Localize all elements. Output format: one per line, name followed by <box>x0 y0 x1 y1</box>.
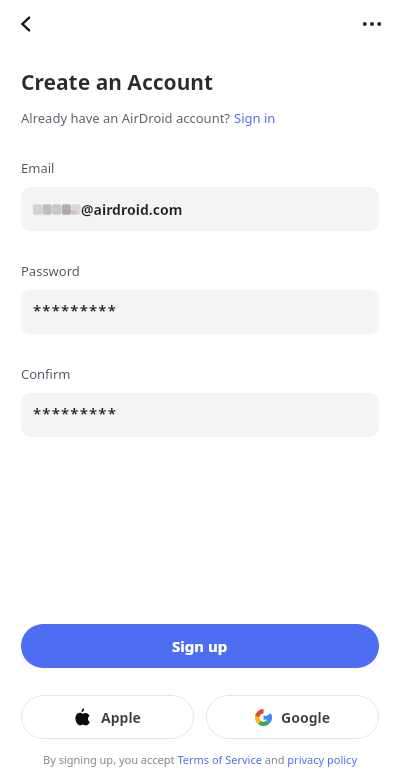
staticText: By signing up, you accept Terms of Servi… <box>43 752 357 767</box>
button[interactable]: Google <box>206 695 379 739</box>
button[interactable]: More options <box>352 4 392 44</box>
button[interactable]: Back <box>6 4 46 44</box>
staticText: ********* <box>33 403 117 423</box>
staticText: Already have an AirDroid account? <box>21 109 234 127</box>
staticText: Apple <box>101 708 141 727</box>
staticText: Sign up <box>172 636 228 656</box>
button[interactable]: ********* <box>21 393 379 437</box>
staticText: Confirm <box>21 365 71 383</box>
staticText: Create an Account <box>21 68 214 97</box>
staticText: Google <box>281 708 331 727</box>
button[interactable]: Sign up <box>21 624 379 668</box>
staticText: Password <box>21 262 80 280</box>
button[interactable]: Apple <box>21 695 194 739</box>
staticText: Email <box>21 159 55 177</box>
button[interactable]: Sign in <box>234 109 276 127</box>
staticText: ********* <box>33 300 117 320</box>
button[interactable]: @airdroid.com <box>21 187 379 231</box>
staticText: Sign in <box>234 109 276 127</box>
staticText: @airdroid.com <box>81 200 183 219</box>
button[interactable]: ********* <box>21 290 379 334</box>
